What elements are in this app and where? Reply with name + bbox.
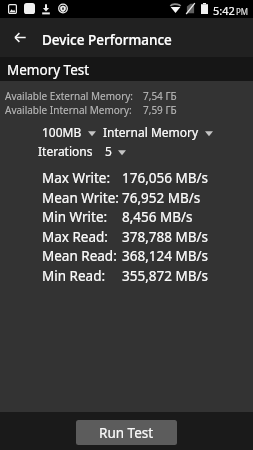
staticText: 7,54 ГБ	[143, 89, 177, 103]
staticText: Mean Write:	[42, 189, 119, 207]
staticText: 5	[105, 143, 112, 159]
staticText: 76,952 MB/s	[122, 189, 201, 207]
staticText: PM	[236, 6, 249, 17]
button[interactable]: Navigate up	[1, 18, 39, 57]
staticText: Max Write:	[42, 169, 111, 187]
staticText: Available External Memory:	[5, 89, 134, 103]
staticText: 8,456 MB/s	[122, 208, 193, 226]
staticText: 176,056 MB/s	[122, 169, 208, 187]
staticText: 355,872 MB/s	[122, 267, 208, 285]
button[interactable]: Internal Memory	[103, 124, 213, 140]
button[interactable]: 100MB	[42, 124, 96, 140]
staticText: Memory Test	[7, 61, 90, 79]
staticText: Run Test	[99, 424, 154, 442]
staticText: 378,788 MB/s	[122, 228, 208, 246]
staticText: Mean Read:	[42, 247, 117, 265]
staticText: 7,59 ГБ	[143, 103, 177, 117]
staticText: 100MB	[42, 124, 82, 140]
button[interactable]: Run Test	[76, 420, 177, 445]
staticText: Min Write:	[42, 208, 108, 226]
button[interactable]: 5	[105, 143, 126, 159]
staticText: Min Read:	[42, 267, 106, 285]
staticText: Max Read:	[42, 228, 108, 246]
staticText: Device Performance	[42, 31, 172, 49]
staticText: 5:42	[213, 3, 235, 18]
staticText: Available Internal Memory:	[5, 103, 132, 117]
staticText: Internal Memory	[103, 124, 199, 140]
staticText: 368,124 MB/s	[122, 247, 208, 265]
staticText: Iterations	[38, 143, 93, 159]
